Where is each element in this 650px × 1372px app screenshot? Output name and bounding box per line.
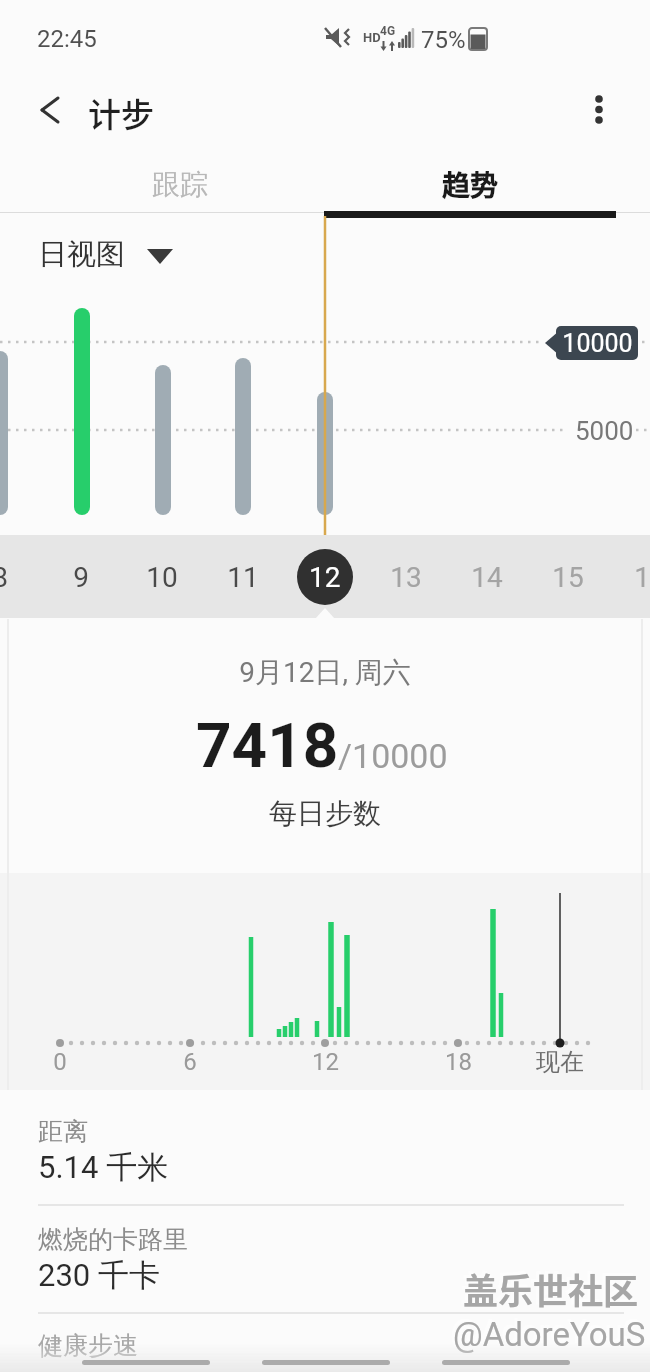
staticText: 15 [552,561,584,594]
button[interactable]: 14 [0,0,64,40]
staticText: 230 千卡 [38,1256,160,1295]
staticText: 13 [390,561,422,594]
button[interactable]: 15 [0,0,64,40]
staticText: 5000 [575,416,634,446]
staticText: 14 [471,561,503,594]
button[interactable] [442,1360,570,1365]
staticText: HD [363,30,381,45]
staticText: 盖乐世社区 [463,1263,639,1314]
staticText: /10000 [338,736,448,776]
staticText: 10 [146,561,178,594]
button[interactable]: 趋势 [324,156,616,212]
button[interactable]: 距离 [0,1094,650,1206]
staticText: 0 [53,1048,67,1076]
staticText: 趋势 [442,164,499,205]
staticText: 盖乐世社区 [460,1260,636,1311]
staticText: 燃烧的卡路里 [38,1224,188,1255]
staticText: 跟踪 [152,167,208,202]
staticText: @AdoreYouS [453,1315,646,1354]
staticText: 75% [421,26,466,54]
staticText: 12 [312,1048,339,1076]
button[interactable] [82,1360,210,1365]
button[interactable]: 日视图 [38,236,178,276]
staticText: 22:45 [37,25,97,53]
staticText: 距离 [38,1116,88,1147]
staticText: 18 [445,1048,472,1076]
staticText: 11 [227,561,259,594]
button[interactable]: 燃烧的卡路里 [0,1206,650,1314]
button[interactable] [262,1360,390,1365]
staticText: 4G [380,24,396,38]
button[interactable]: 10 [0,0,64,40]
staticText: 日视图 [38,236,125,273]
button[interactable]: 12 [297,549,353,605]
staticText: 计步 [88,89,154,137]
staticText: 现在 [536,1047,584,1077]
staticText: 5.14 千米 [38,1148,169,1187]
staticText: 16 [634,561,650,594]
staticText: 9月12日, 周六 [239,655,411,690]
staticText: 10000 [562,329,633,358]
staticText: @AdoreYouS [450,1312,643,1351]
staticText: 每日步数 [269,796,381,831]
staticText: 8 [0,561,8,594]
staticText: 12 [309,561,341,594]
staticText: 健康步速 [38,1330,138,1361]
button[interactable]: 11 [0,0,64,40]
button[interactable]: 8 [0,0,64,40]
button[interactable]: 16 [0,0,64,40]
button[interactable] [28,88,72,132]
button[interactable]: 9 [0,0,64,40]
staticText: 9 [73,561,89,594]
button[interactable]: 13 [0,0,64,40]
button[interactable]: 跟踪 [36,156,324,212]
button[interactable] [580,88,624,132]
staticText: 7418 [196,709,339,782]
staticText: 6 [183,1048,197,1076]
